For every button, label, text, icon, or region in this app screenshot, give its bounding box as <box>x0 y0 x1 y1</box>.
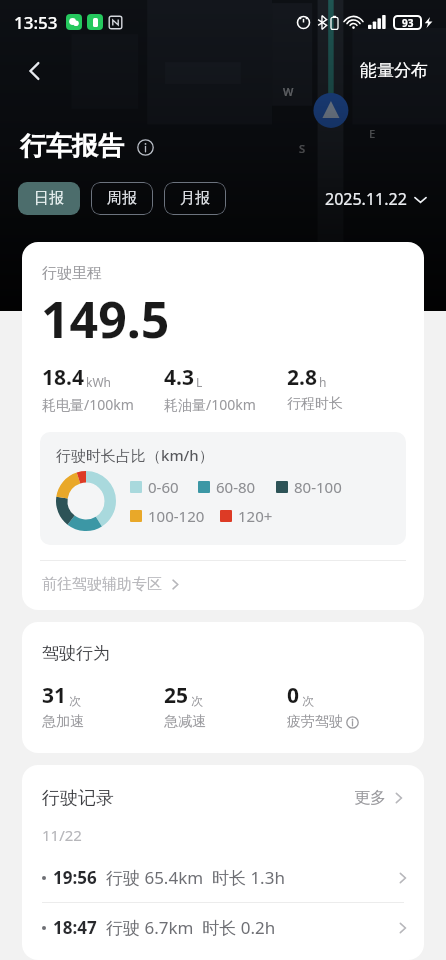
button[interactable]: 周报 <box>91 182 153 215</box>
button[interactable]: 能量分布 <box>354 54 434 87</box>
staticText: 100-120 <box>148 506 205 526</box>
staticText: 次 <box>302 693 314 708</box>
staticText: L <box>196 374 203 390</box>
staticText: 0-60 <box>148 477 179 497</box>
staticText: 耗电量/100km <box>42 395 134 414</box>
staticText: 13:53 <box>14 11 58 34</box>
staticText: 19:56 <box>53 866 97 889</box>
staticText: S <box>299 141 306 156</box>
staticText: kWh <box>86 374 111 390</box>
button[interactable]: Fatigue driving info <box>344 714 360 730</box>
staticText: 25 <box>164 681 189 710</box>
button[interactable]: 日报 <box>18 182 80 215</box>
staticText: W <box>283 84 294 99</box>
staticText: 次 <box>191 693 203 708</box>
button[interactable]: Back <box>10 46 60 96</box>
staticText: 行驶里程 <box>42 264 102 283</box>
staticText: 日报 <box>34 189 64 208</box>
button[interactable]: 更多 <box>350 784 410 812</box>
staticText: 能量分布 <box>360 60 428 81</box>
staticText: 急减速 <box>164 713 206 731</box>
staticText: 80-100 <box>294 477 342 497</box>
staticText: 行程时长 <box>287 395 343 413</box>
staticText: 月报 <box>180 189 210 208</box>
staticText: 前往驾驶辅助专区 <box>42 575 162 594</box>
staticText: 行驶时长占比（km/h） <box>56 445 214 465</box>
staticText: h <box>319 374 327 390</box>
staticText: 耗油量/100km <box>164 395 256 414</box>
staticText: 2025.11.22 <box>325 188 407 210</box>
staticText: 2.8 <box>287 363 317 392</box>
staticText: 31 <box>42 681 67 710</box>
staticText: 120+ <box>238 506 273 526</box>
staticText: 149.5 <box>41 285 170 353</box>
staticText: 驾驶行为 <box>42 643 110 664</box>
staticText: 0 <box>287 681 300 710</box>
staticText: 11/22 <box>42 825 82 845</box>
staticText: E <box>369 126 376 141</box>
staticText: 疲劳驾驶 <box>287 713 343 731</box>
staticText: 18.4 <box>42 363 84 392</box>
button[interactable]: 2025.11.22 <box>321 184 432 214</box>
staticText: 行驶 65.4km 时长 1.3h <box>106 866 285 889</box>
button[interactable]: 前往驾驶辅助专区 <box>22 561 424 610</box>
staticText: 急加速 <box>42 713 84 731</box>
button[interactable]: 18:47 <box>22 903 424 952</box>
staticText: 周报 <box>107 189 137 208</box>
staticText: 行驶 6.7km 时长 0.2h <box>106 916 276 939</box>
button[interactable]: 月报 <box>164 182 226 215</box>
staticText: 93 <box>402 16 414 30</box>
staticText: 行驶记录 <box>42 787 114 810</box>
button[interactable]: Info <box>132 134 158 160</box>
staticText: 4.3 <box>164 363 194 392</box>
staticText: 更多 <box>354 788 386 808</box>
staticText: 18:47 <box>53 916 97 939</box>
staticText: 行车报告 <box>20 130 124 163</box>
staticText: 次 <box>69 693 81 708</box>
staticText: 60-80 <box>216 477 256 497</box>
button[interactable]: 19:56 <box>22 853 424 902</box>
